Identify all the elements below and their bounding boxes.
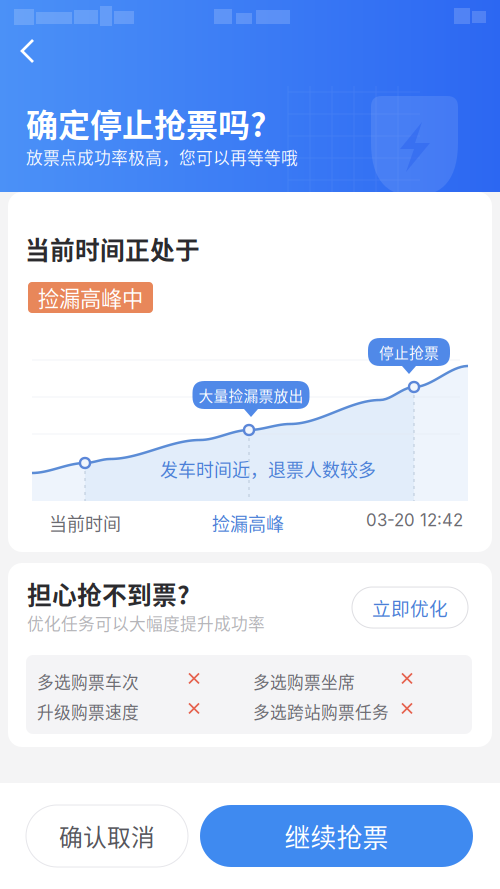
staticText: 多选购票坐席 (253, 669, 355, 693)
button[interactable]: 继续抢票 (200, 805, 473, 867)
staticText: 多选跨站购票任务 (253, 699, 389, 723)
staticText: 确认取消 (59, 819, 155, 853)
button[interactable]: 立即优化 (352, 587, 468, 628)
staticText: 优化任务可以大幅度提升成功率 (27, 611, 265, 635)
staticText: 多选购票车次 (37, 669, 139, 693)
staticText: 当前时间正处于 (25, 231, 200, 267)
button[interactable]: 确认取消 (26, 805, 188, 867)
staticText: 捡漏高峰中 (38, 282, 143, 313)
button[interactable]: Back (0, 28, 54, 74)
staticText: 当前时间 (49, 510, 121, 536)
staticText: 停止抢票 (379, 341, 439, 363)
staticText: 立即优化 (372, 594, 448, 621)
staticText: 担心抢不到票? (27, 576, 190, 612)
staticText: 确定停止抢票吗? (26, 100, 266, 146)
staticText: 继续抢票 (284, 817, 388, 855)
staticText: 升级购票速度 (37, 699, 139, 723)
staticText: 放票点成功率极高，您可以再等等哦 (26, 145, 298, 169)
staticText: 捡漏高峰 (212, 510, 284, 536)
staticText: 03-20 12:42 (366, 510, 463, 530)
staticText: 大量捡漏票放出 (198, 384, 303, 406)
staticText: 发车时间近，退票人数较多 (160, 456, 376, 482)
